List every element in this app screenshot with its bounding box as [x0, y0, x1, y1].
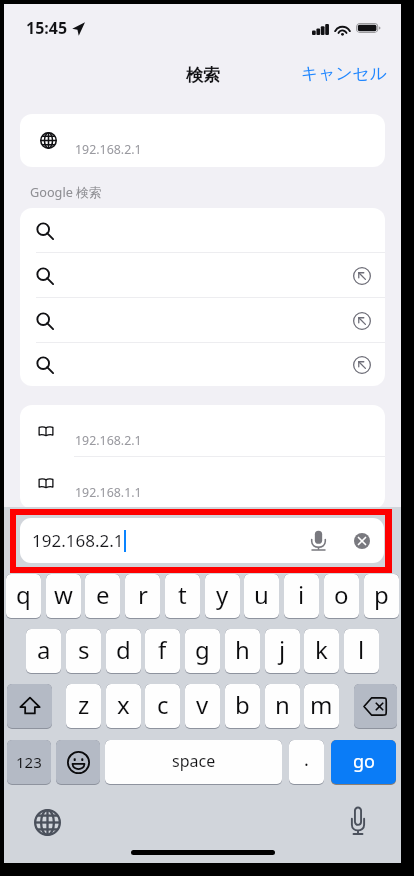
staticText: 123	[16, 752, 42, 772]
staticText: Google 検索	[30, 183, 102, 200]
staticText: f	[158, 633, 167, 666]
staticText: g	[195, 633, 210, 666]
button[interactable]: 192.168.2.1	[20, 518, 384, 563]
button[interactable]: Dictation	[349, 807, 367, 835]
button[interactable]: go	[331, 740, 396, 785]
button[interactable]: x	[106, 684, 141, 729]
staticText: w	[54, 578, 73, 611]
staticText: go	[353, 749, 375, 774]
staticText: z	[78, 688, 90, 721]
button[interactable]: n	[265, 684, 300, 729]
staticText: 192.168.1.1	[75, 484, 142, 501]
button[interactable]: c	[145, 684, 180, 729]
button[interactable]: r	[125, 574, 160, 619]
staticText: k	[315, 633, 328, 666]
button[interactable]: d	[106, 629, 141, 674]
button[interactable]: 192.168.2.1	[20, 405, 385, 457]
button[interactable]: m	[304, 684, 339, 729]
staticText: r	[138, 578, 148, 611]
button[interactable]: y	[205, 574, 240, 619]
button[interactable]: キャンセル	[299, 59, 389, 88]
button[interactable]: 123	[7, 740, 51, 785]
staticText: d	[116, 633, 131, 666]
staticText: j	[279, 633, 286, 666]
staticText: u	[254, 578, 269, 611]
button[interactable]: q	[6, 574, 41, 619]
staticText: x	[117, 688, 130, 721]
button[interactable]: p	[364, 574, 399, 619]
staticText: s	[78, 633, 90, 666]
staticText: i	[298, 578, 305, 611]
staticText: m	[310, 688, 333, 721]
staticText: l	[358, 633, 365, 666]
button[interactable]: Change keyboard	[34, 809, 61, 836]
button[interactable]: w	[46, 574, 81, 619]
staticText: 検索	[186, 65, 220, 86]
button[interactable]: e	[85, 574, 120, 619]
staticText: t	[178, 578, 187, 611]
button[interactable]: k	[304, 629, 339, 674]
staticText: .	[304, 747, 309, 772]
staticText: n	[275, 688, 290, 721]
button[interactable]: t	[165, 574, 200, 619]
button[interactable]: space	[105, 740, 282, 785]
button[interactable]: .	[289, 740, 324, 785]
button[interactable]: l	[344, 629, 379, 674]
button[interactable]: g	[185, 629, 220, 674]
staticText: space	[172, 750, 216, 772]
button[interactable]: h	[225, 629, 260, 674]
staticText: a	[37, 633, 51, 666]
button[interactable]: b	[225, 684, 260, 729]
button[interactable]: 192.168.1.1	[20, 457, 385, 509]
staticText: y	[216, 578, 229, 611]
staticText: 192.168.2.1	[75, 141, 142, 158]
staticText: q	[16, 578, 31, 611]
staticText: キャンセル	[301, 63, 387, 84]
button[interactable]: u	[244, 574, 279, 619]
button[interactable]	[20, 208, 385, 253]
staticText: e	[96, 578, 110, 611]
button[interactable]	[20, 253, 385, 298]
staticText: b	[235, 688, 250, 721]
button[interactable]: Clear text	[354, 533, 370, 549]
button[interactable]: Emoji	[56, 740, 100, 785]
button[interactable]: j	[265, 629, 300, 674]
button[interactable]: Voice search	[310, 530, 327, 551]
button[interactable]: Shift	[7, 684, 52, 729]
button[interactable]: s	[66, 629, 101, 674]
staticText: h	[235, 633, 250, 666]
button[interactable]: o	[324, 574, 359, 619]
staticText: 192.168.2.1	[32, 529, 124, 552]
staticText: p	[374, 578, 389, 611]
button[interactable]: 192.168.2.1	[20, 114, 385, 167]
button[interactable]: f	[145, 629, 180, 674]
button[interactable]	[20, 343, 385, 386]
button[interactable]: a	[26, 629, 61, 674]
staticText: c	[157, 688, 169, 721]
staticText: 15:45	[26, 17, 68, 39]
staticText: v	[196, 688, 209, 721]
button[interactable]: v	[185, 684, 220, 729]
button[interactable]	[20, 298, 385, 343]
button[interactable]: z	[66, 684, 101, 729]
staticText: 192.168.2.1	[75, 432, 142, 449]
staticText: o	[334, 578, 349, 611]
button[interactable]: i	[284, 574, 319, 619]
button[interactable]: Backspace	[354, 684, 397, 729]
